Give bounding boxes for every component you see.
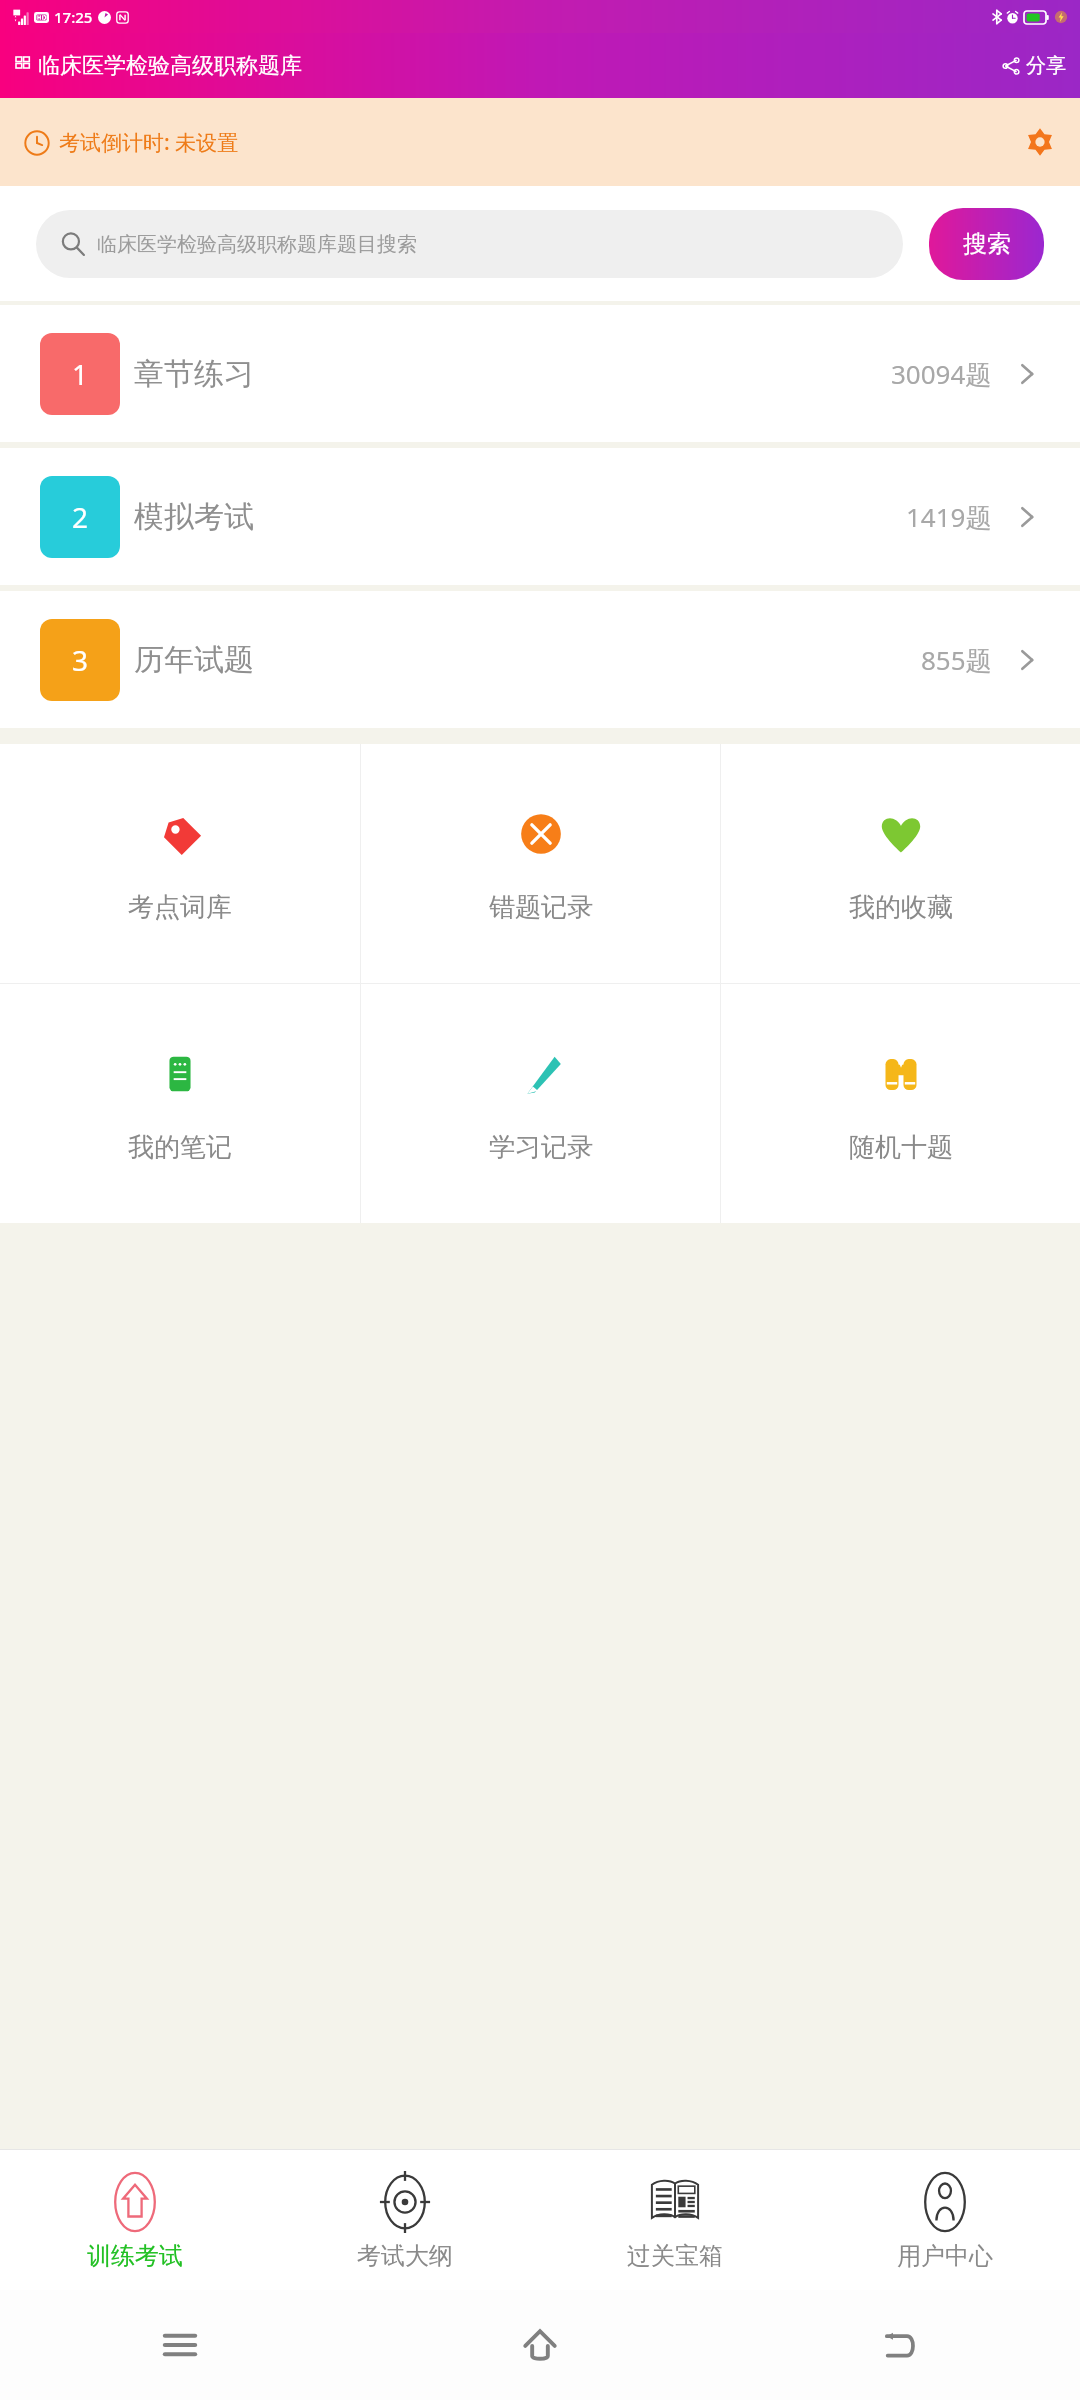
button[interactable]: 1: [0, 305, 1080, 442]
button[interactable]: 搜索: [929, 208, 1044, 280]
staticText: 1: [72, 355, 89, 393]
staticText: 考试大纲: [357, 2241, 453, 2271]
button[interactable]: Settings: [1018, 120, 1062, 164]
button[interactable]: 随机十题: [721, 984, 1080, 1223]
staticText: 17:25: [54, 7, 93, 27]
staticText: 我的笔记: [128, 1131, 232, 1164]
staticText: 章节练习: [134, 355, 254, 393]
staticText: 搜索: [963, 229, 1011, 259]
staticText: 模拟考试: [134, 498, 254, 536]
staticText: 855题: [921, 642, 992, 678]
staticText: 3: [72, 641, 89, 679]
button[interactable]: 过关宝箱: [540, 2150, 810, 2290]
staticText: 临床医学检验高级职称题库题目搜索: [97, 232, 417, 257]
button[interactable]: 考试大纲: [270, 2150, 540, 2290]
button[interactable]: Home: [360, 2290, 720, 2400]
staticText: 过关宝箱: [627, 2241, 723, 2271]
button[interactable]: 分享: [987, 45, 1080, 86]
staticText: 我的收藏: [849, 891, 953, 924]
staticText: 分享: [1026, 53, 1066, 78]
staticText: 历年试题: [134, 641, 254, 679]
staticText: 临床医学检验高级职称题库: [38, 52, 302, 80]
staticText: 考点词库: [128, 891, 232, 924]
staticText: 2: [72, 498, 89, 536]
button[interactable]: 学习记录: [361, 984, 720, 1223]
button[interactable]: 错题记录: [361, 744, 720, 983]
staticText: 1419题: [906, 499, 992, 535]
staticText: 错题记录: [489, 891, 593, 924]
button[interactable]: 临床医学检验高级职称题库题目搜索: [36, 210, 903, 278]
button[interactable]: 用户中心: [810, 2150, 1080, 2290]
staticText: 学习记录: [489, 1131, 593, 1164]
button[interactable]: Back: [720, 2290, 1080, 2400]
staticText: 训练考试: [87, 2241, 183, 2271]
button[interactable]: 考试倒计时: 未设置: [0, 98, 1080, 186]
button[interactable]: 我的笔记: [0, 984, 360, 1223]
staticText: 考试倒计时: 未设置: [59, 128, 239, 157]
staticText: 用户中心: [897, 2241, 993, 2271]
button[interactable]: 3: [0, 591, 1080, 728]
button[interactable]: 我的收藏: [721, 744, 1080, 983]
button[interactable]: 2: [0, 448, 1080, 585]
staticText: 随机十题: [849, 1131, 953, 1164]
staticText: 30094题: [891, 356, 992, 392]
button[interactable]: 考点词库: [0, 744, 360, 983]
button[interactable]: 训练考试: [0, 2150, 270, 2290]
button[interactable]: Recents: [0, 2290, 360, 2400]
